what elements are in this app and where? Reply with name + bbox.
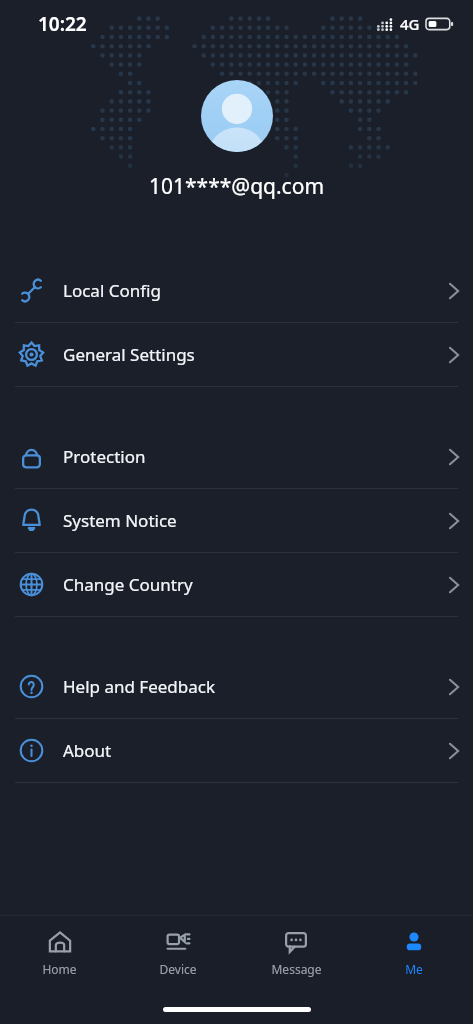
staticText: Help and Feedback (63, 675, 443, 698)
staticText: 101****@qq.com (0, 172, 473, 201)
staticText: General Settings (63, 343, 443, 366)
button[interactable]: Home (0, 916, 119, 992)
staticText: Message (271, 961, 322, 977)
staticText: About (63, 739, 443, 762)
staticText: 4G (400, 14, 420, 34)
button[interactable]: System Notice (0, 489, 473, 552)
button[interactable]: Help and Feedback (0, 655, 473, 718)
button[interactable]: About (0, 719, 473, 782)
staticText: Protection (63, 445, 443, 468)
staticText: Local Config (63, 279, 443, 302)
staticText: Change Country (63, 573, 443, 596)
staticText: Device (159, 961, 197, 977)
button[interactable]: General Settings (0, 323, 473, 386)
button[interactable]: Device (119, 916, 237, 992)
staticText: Home (42, 961, 77, 977)
button[interactable]: Message (237, 916, 355, 992)
staticText: System Notice (63, 509, 443, 532)
staticText: 10:22 (38, 11, 87, 37)
staticText: Me (405, 961, 423, 977)
button[interactable]: Change Country (0, 553, 473, 616)
button[interactable]: Protection (0, 425, 473, 488)
button[interactable]: Me (355, 916, 473, 992)
button[interactable]: Local Config (0, 259, 473, 322)
